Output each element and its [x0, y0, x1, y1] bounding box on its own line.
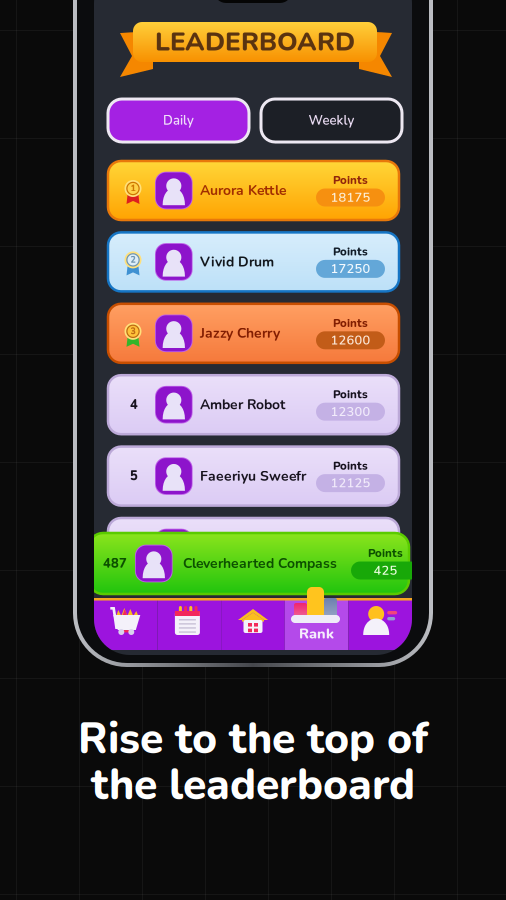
staticText: Jazzy Cherry	[200, 324, 280, 343]
button[interactable]: Home	[221, 598, 285, 650]
staticText: 6	[130, 539, 138, 556]
button[interactable]: 5	[108, 447, 399, 506]
staticText: Points	[333, 172, 368, 188]
staticText: Rise to the top of	[78, 710, 428, 768]
button[interactable]: 4	[108, 375, 399, 434]
staticText: Points	[333, 387, 368, 402]
button[interactable]: 2	[108, 232, 399, 291]
staticText: Aurora Kettle	[200, 181, 287, 200]
staticText: 12125	[330, 474, 370, 492]
staticText: Points	[333, 315, 368, 331]
staticText: Points	[333, 458, 368, 474]
staticText: Points	[333, 529, 368, 545]
staticText: 5	[130, 467, 138, 485]
staticText: Points	[368, 545, 403, 561]
staticText: 1	[130, 182, 135, 194]
button[interactable]: 487	[89, 533, 409, 594]
button[interactable]: 3	[108, 304, 399, 363]
button[interactable]: 6	[108, 518, 399, 577]
button[interactable]: Weekly	[261, 99, 402, 142]
button[interactable]: 1	[108, 161, 399, 220]
button[interactable]: Rank	[285, 598, 348, 650]
staticText: LEADERBOARD	[155, 24, 355, 60]
staticText: Amber Robot	[200, 395, 285, 414]
staticText: 4	[130, 396, 138, 413]
staticText: Points	[333, 244, 368, 259]
staticText: Breezy Atlas	[200, 538, 282, 557]
staticText: Rank	[299, 624, 334, 644]
staticText: Vivid Drum	[200, 252, 274, 271]
staticText: 18175	[330, 189, 370, 206]
staticText: the leaderboard	[91, 756, 415, 814]
staticText: 3	[130, 325, 135, 337]
button[interactable]: List	[158, 598, 221, 650]
staticText: 12600	[330, 332, 370, 349]
button[interactable]: Profile	[348, 598, 412, 650]
staticText: 2	[130, 254, 135, 266]
staticText: Cleverhearted Compass	[183, 554, 337, 573]
staticText: 11980	[330, 546, 370, 563]
staticText: 487	[103, 555, 127, 572]
staticText: Daily	[163, 112, 194, 129]
button[interactable]: Shop	[94, 598, 158, 650]
staticText: Weekly	[308, 112, 354, 129]
staticText: 17250	[330, 260, 370, 278]
staticText: 12300	[330, 403, 370, 420]
staticText: Faeeriyu Sweefr	[200, 467, 306, 485]
staticText: 425	[373, 562, 397, 579]
button[interactable]: Daily	[108, 99, 249, 142]
